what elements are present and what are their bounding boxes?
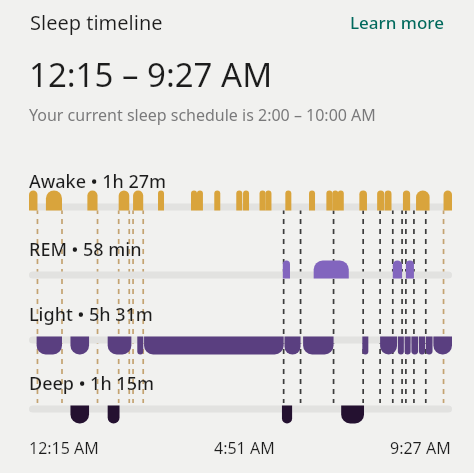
staticText: Light • 5h 31m — [29, 302, 153, 327]
staticText: REM • 58 min — [29, 237, 142, 262]
staticText: 4:51 AM — [214, 437, 275, 459]
staticText: Deep • 1h 15m — [29, 371, 155, 396]
staticText: 9:27 AM — [390, 437, 451, 459]
staticText: Learn more — [350, 11, 444, 34]
staticText: Sleep timeline — [30, 9, 163, 36]
staticText: 12:15 AM — [29, 437, 99, 459]
staticText: 12:15 – 9:27 AM — [29, 52, 273, 97]
staticText: Your current sleep schedule is 2:00 – 10… — [29, 104, 376, 126]
staticText: Awake • 1h 27m — [29, 169, 167, 194]
button[interactable]: Learn more about sleep timeline — [348, 9, 446, 36]
